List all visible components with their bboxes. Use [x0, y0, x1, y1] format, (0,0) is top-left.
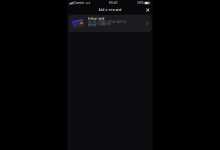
staticText: 09:41	[109, 1, 118, 5]
staticText: Virtual card	[87, 17, 104, 20]
staticText: Carrier	[74, 1, 84, 5]
staticText: online payments.	[87, 22, 111, 26]
staticText: Add a new card	[98, 8, 121, 12]
staticText: Get an instant virtual card for secure	[87, 20, 126, 27]
button[interactable]: Close	[144, 7, 151, 13]
staticText: LTE	[85, 1, 89, 5]
staticText: 58%	[137, 1, 143, 5]
button[interactable]: Virtual card	[68, 15, 151, 32]
